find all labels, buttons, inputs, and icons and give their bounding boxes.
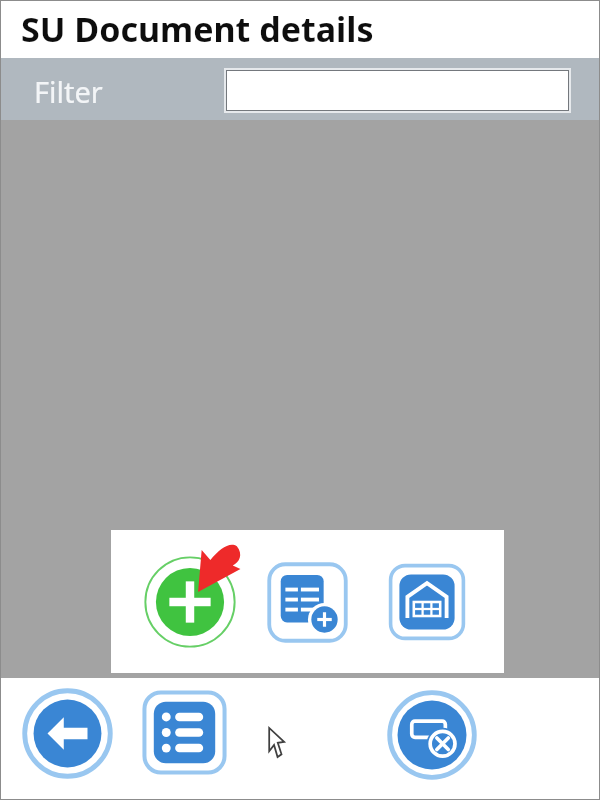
staticText: Filter — [34, 72, 103, 111]
button[interactable]: Warehouse — [387, 562, 467, 642]
button[interactable]: Filter text field — [224, 68, 571, 113]
button[interactable]: Add new document — [142, 554, 238, 650]
button[interactable]: List — [140, 688, 229, 777]
button[interactable]: Add document line — [265, 560, 350, 645]
button[interactable]: Remove label — [386, 689, 478, 781]
staticText: SU Document details — [21, 6, 374, 52]
button[interactable]: Back — [21, 687, 114, 780]
